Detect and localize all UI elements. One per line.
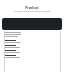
button[interactable]: [5, 55, 59, 60]
button[interactable]: [5, 45, 59, 50]
button[interactable]: [5, 40, 59, 45]
staticText: AI photo editor for your products: [0, 9, 64, 12]
button[interactable]: [5, 50, 59, 55]
button[interactable]: Hero banner: [2, 18, 62, 30]
staticText: Pixelcut: [0, 5, 64, 10]
